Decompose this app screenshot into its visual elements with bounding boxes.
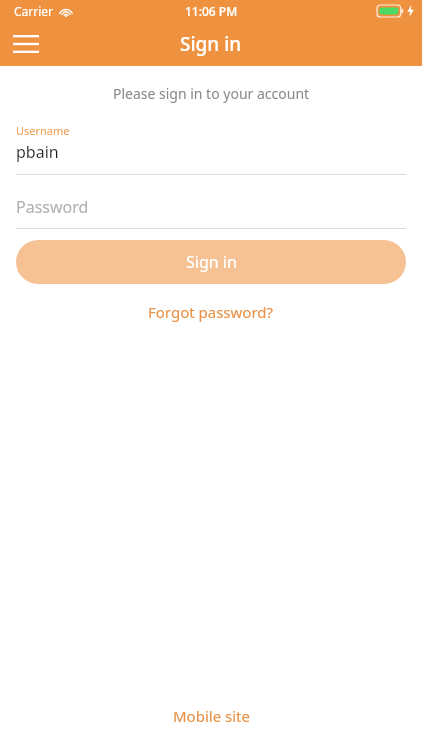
staticText: Carrier (14, 3, 54, 19)
staticText: 11:06 PM (185, 3, 238, 19)
button[interactable]: pbain (16, 141, 406, 163)
staticText: Mobile site (173, 706, 250, 726)
staticText: Forgot password? (148, 302, 274, 322)
button[interactable]: Password (16, 195, 406, 219)
staticText: Please sign in to your account (0, 84, 422, 103)
staticText: Password (16, 196, 89, 218)
button[interactable]: Mobile site (163, 702, 260, 730)
staticText: Username (16, 123, 70, 138)
staticText: Sign in (186, 251, 237, 273)
button[interactable]: Sign in (16, 240, 406, 284)
button[interactable]: Open navigation menu (0, 22, 52, 66)
staticText: pbain (16, 141, 59, 163)
button[interactable]: Forgot password? (138, 298, 284, 326)
staticText: Sign in (180, 31, 242, 57)
